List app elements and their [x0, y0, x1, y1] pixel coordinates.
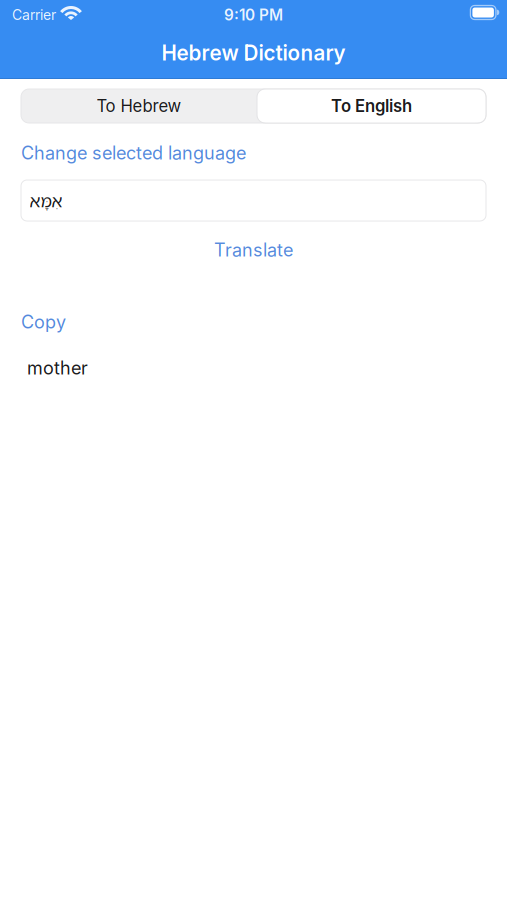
- staticText: Change selected language: [21, 142, 246, 164]
- staticText: Translate: [214, 239, 293, 261]
- button[interactable]: To Hebrew: [21, 89, 257, 123]
- button[interactable]: אִמָּא: [21, 180, 486, 221]
- staticText: Hebrew Dictionary: [161, 40, 345, 65]
- staticText: Carrier: [12, 6, 56, 23]
- staticText: To Hebrew: [96, 96, 181, 116]
- staticText: mother: [27, 357, 88, 379]
- button[interactable]: To English: [257, 89, 486, 123]
- staticText: To English: [331, 96, 412, 116]
- button[interactable]: Copy: [21, 313, 66, 331]
- staticText: 9:10 PM: [224, 6, 283, 24]
- staticText: Copy: [21, 311, 66, 333]
- staticText: אִמָּא: [29, 189, 62, 212]
- button[interactable]: Change selected language: [21, 144, 246, 162]
- button[interactable]: Translate: [21, 239, 486, 261]
